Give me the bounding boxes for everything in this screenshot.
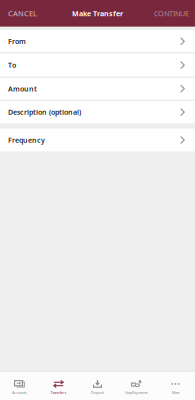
staticText: Amount [8, 84, 37, 93]
staticText: From [8, 37, 26, 46]
button[interactable]: Deposit [78, 372, 117, 400]
button[interactable]: StopPayments [117, 372, 156, 400]
button[interactable]: CANCEL [0, 0, 43, 26]
staticText: Accounts [12, 390, 27, 395]
staticText: Transfers [50, 390, 66, 395]
staticText: More [171, 390, 179, 395]
button[interactable]: Accounts [0, 372, 39, 400]
button[interactable]: More [156, 372, 195, 400]
staticText: CONTINUE [154, 9, 189, 18]
button[interactable]: Amount [0, 78, 195, 100]
button[interactable]: From [0, 30, 195, 53]
button[interactable]: To [0, 53, 195, 77]
button[interactable]: CONTINUE [148, 0, 195, 26]
staticText: CANCEL [8, 8, 37, 18]
staticText: Deposit [91, 390, 104, 395]
staticText: Description (optional) [8, 107, 81, 117]
button[interactable]: Transfers [39, 372, 78, 400]
staticText: Frequency [8, 135, 45, 145]
staticText: StopPayments [125, 390, 148, 395]
staticText: Make Transfer [72, 9, 123, 18]
staticText: To [8, 60, 16, 70]
button[interactable]: Description (optional) [0, 101, 195, 124]
button[interactable]: Frequency [0, 129, 195, 151]
